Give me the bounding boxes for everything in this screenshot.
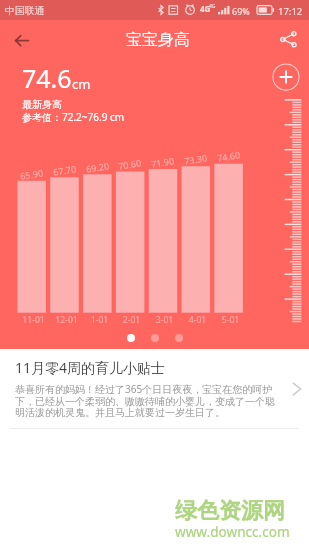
staticText: 中国联通 [5,5,45,17]
button[interactable]: Back [8,25,36,53]
staticText: 11月零4周的育儿小贴士 [15,358,166,377]
staticText: 70.60 [117,156,143,172]
staticText: 绿色资源网 [175,497,285,525]
staticText: 4G [200,3,211,14]
staticText: 12-01 [52,314,81,326]
staticText: 11-01 [19,314,48,326]
staticText: 参考值：72.2~76.9 cm [22,110,125,124]
staticText: 69% [232,5,250,17]
staticText: 17:12 [278,5,303,18]
staticText: 4-01 [183,314,212,326]
staticText: cm [72,75,91,93]
staticText: 5-01 [216,314,245,326]
staticText: 65.90 [19,166,45,182]
staticText: 73.30 [183,151,209,167]
staticText: 宝宝身高 [126,30,190,50]
staticText: 69.20 [85,159,111,175]
staticText: 1-01 [85,314,114,326]
staticText: 最新身高 [22,98,62,111]
staticText: 4G [209,3,216,10]
staticText: www.downcc.com [175,522,290,541]
staticText: 74.6 [22,61,72,95]
staticText: 恭喜所有的妈妈！经过了365个日日夜夜，宝宝在您的呵护下，已经从一个柔弱的、嗷嗷… [15,382,281,418]
staticText: 67.70 [52,162,78,178]
staticText: 2-01 [117,314,146,326]
staticText: 74.60 [216,148,242,164]
staticText: 3-01 [150,314,179,326]
button[interactable]: Share [275,26,301,52]
button[interactable]: 11月零4周的育儿小贴士 [0,349,309,429]
button[interactable] [151,334,159,342]
staticText: 71.90 [150,154,176,170]
button[interactable]: Add height record [272,63,300,91]
button[interactable] [175,334,183,342]
button[interactable] [127,334,135,342]
